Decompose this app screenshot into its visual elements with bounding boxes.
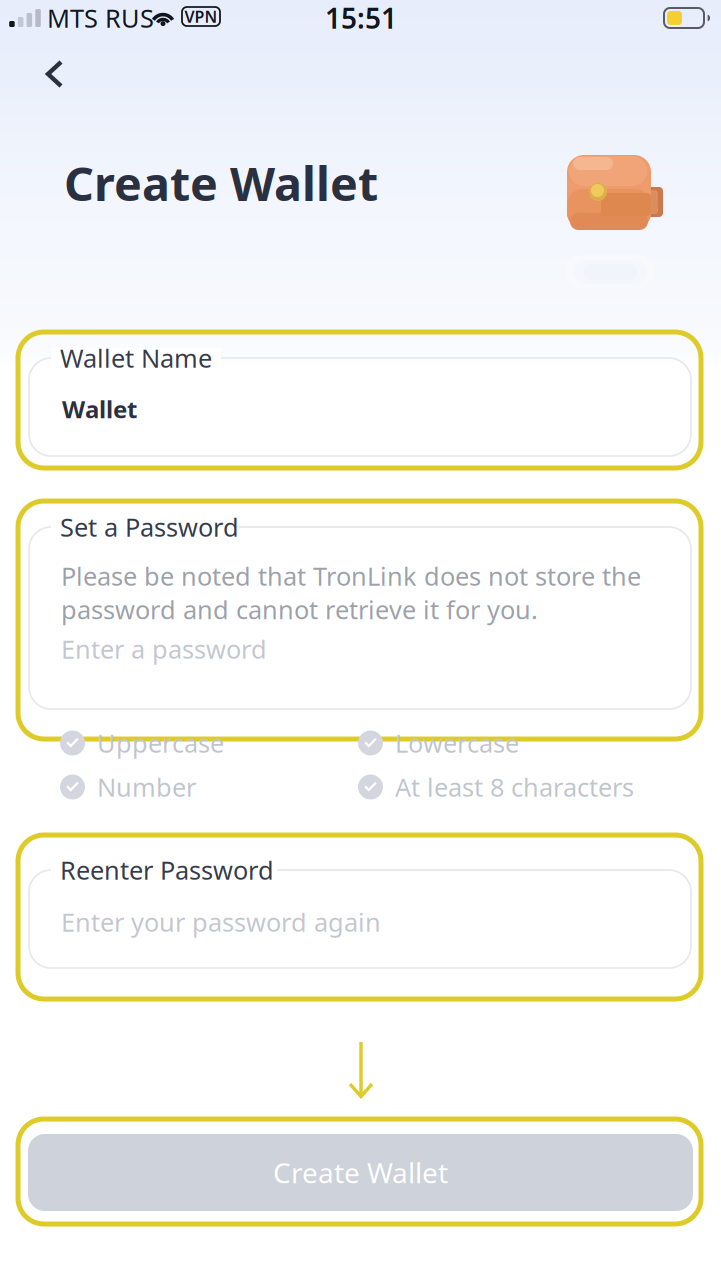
staticText: Number [97, 770, 196, 804]
button[interactable]: Back [28, 48, 80, 100]
staticText: Set a Password [60, 510, 239, 544]
staticText: Wallet [62, 393, 137, 425]
staticText: Wallet Name [60, 341, 212, 375]
staticText: Enter a password [61, 632, 267, 666]
button[interactable]: Create Wallet [28, 1134, 693, 1211]
staticText: Lowercase [395, 726, 519, 760]
staticText: Uppercase [97, 726, 224, 760]
staticText: VPN [184, 6, 217, 27]
staticText: MTS RUS [47, 1, 154, 35]
staticText: Create Wallet [273, 1154, 448, 1191]
staticText: Create Wallet [64, 152, 378, 214]
staticText: Enter your password again [61, 905, 381, 939]
staticText: Reenter Password [60, 853, 274, 887]
staticText: At least 8 characters [395, 770, 634, 804]
staticText: 15:51 [325, 0, 397, 37]
staticText: Please be noted that TronLink does not s… [61, 559, 641, 626]
